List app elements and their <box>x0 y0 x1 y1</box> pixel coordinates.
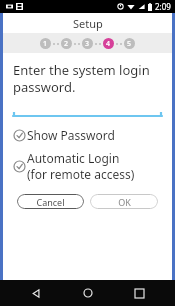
button[interactable]: 3 <box>82 38 93 49</box>
button[interactable]: 4 <box>103 38 114 49</box>
staticText: 2 <box>64 39 69 49</box>
staticText: Enter the system login password. <box>13 61 150 96</box>
button[interactable]: Back <box>21 280 51 306</box>
button[interactable]: 2 <box>61 38 72 49</box>
button[interactable]: 1 <box>40 38 51 49</box>
staticText: 4 <box>106 39 111 49</box>
button[interactable] <box>13 106 162 118</box>
button[interactable]: Home <box>73 280 103 306</box>
button[interactable]: OK <box>90 194 158 209</box>
staticText: 1 <box>43 39 48 49</box>
staticText: (for remote access) <box>27 166 135 182</box>
staticText: Show Password <box>27 127 115 143</box>
staticText: Cancel <box>36 196 65 208</box>
button[interactable]: 5 <box>124 38 135 49</box>
button[interactable]: Automatic Login <box>13 150 162 182</box>
staticText: 2:09 <box>155 1 171 12</box>
staticText: Automatic Login <box>27 150 120 166</box>
staticText: OK <box>118 196 131 208</box>
button[interactable]: Recent apps <box>124 280 154 306</box>
button[interactable]: Show Password <box>13 127 162 143</box>
staticText: 5 <box>127 39 132 49</box>
staticText: Setup <box>73 16 103 31</box>
staticText: 3 <box>85 39 90 49</box>
button[interactable]: Cancel <box>17 194 84 209</box>
